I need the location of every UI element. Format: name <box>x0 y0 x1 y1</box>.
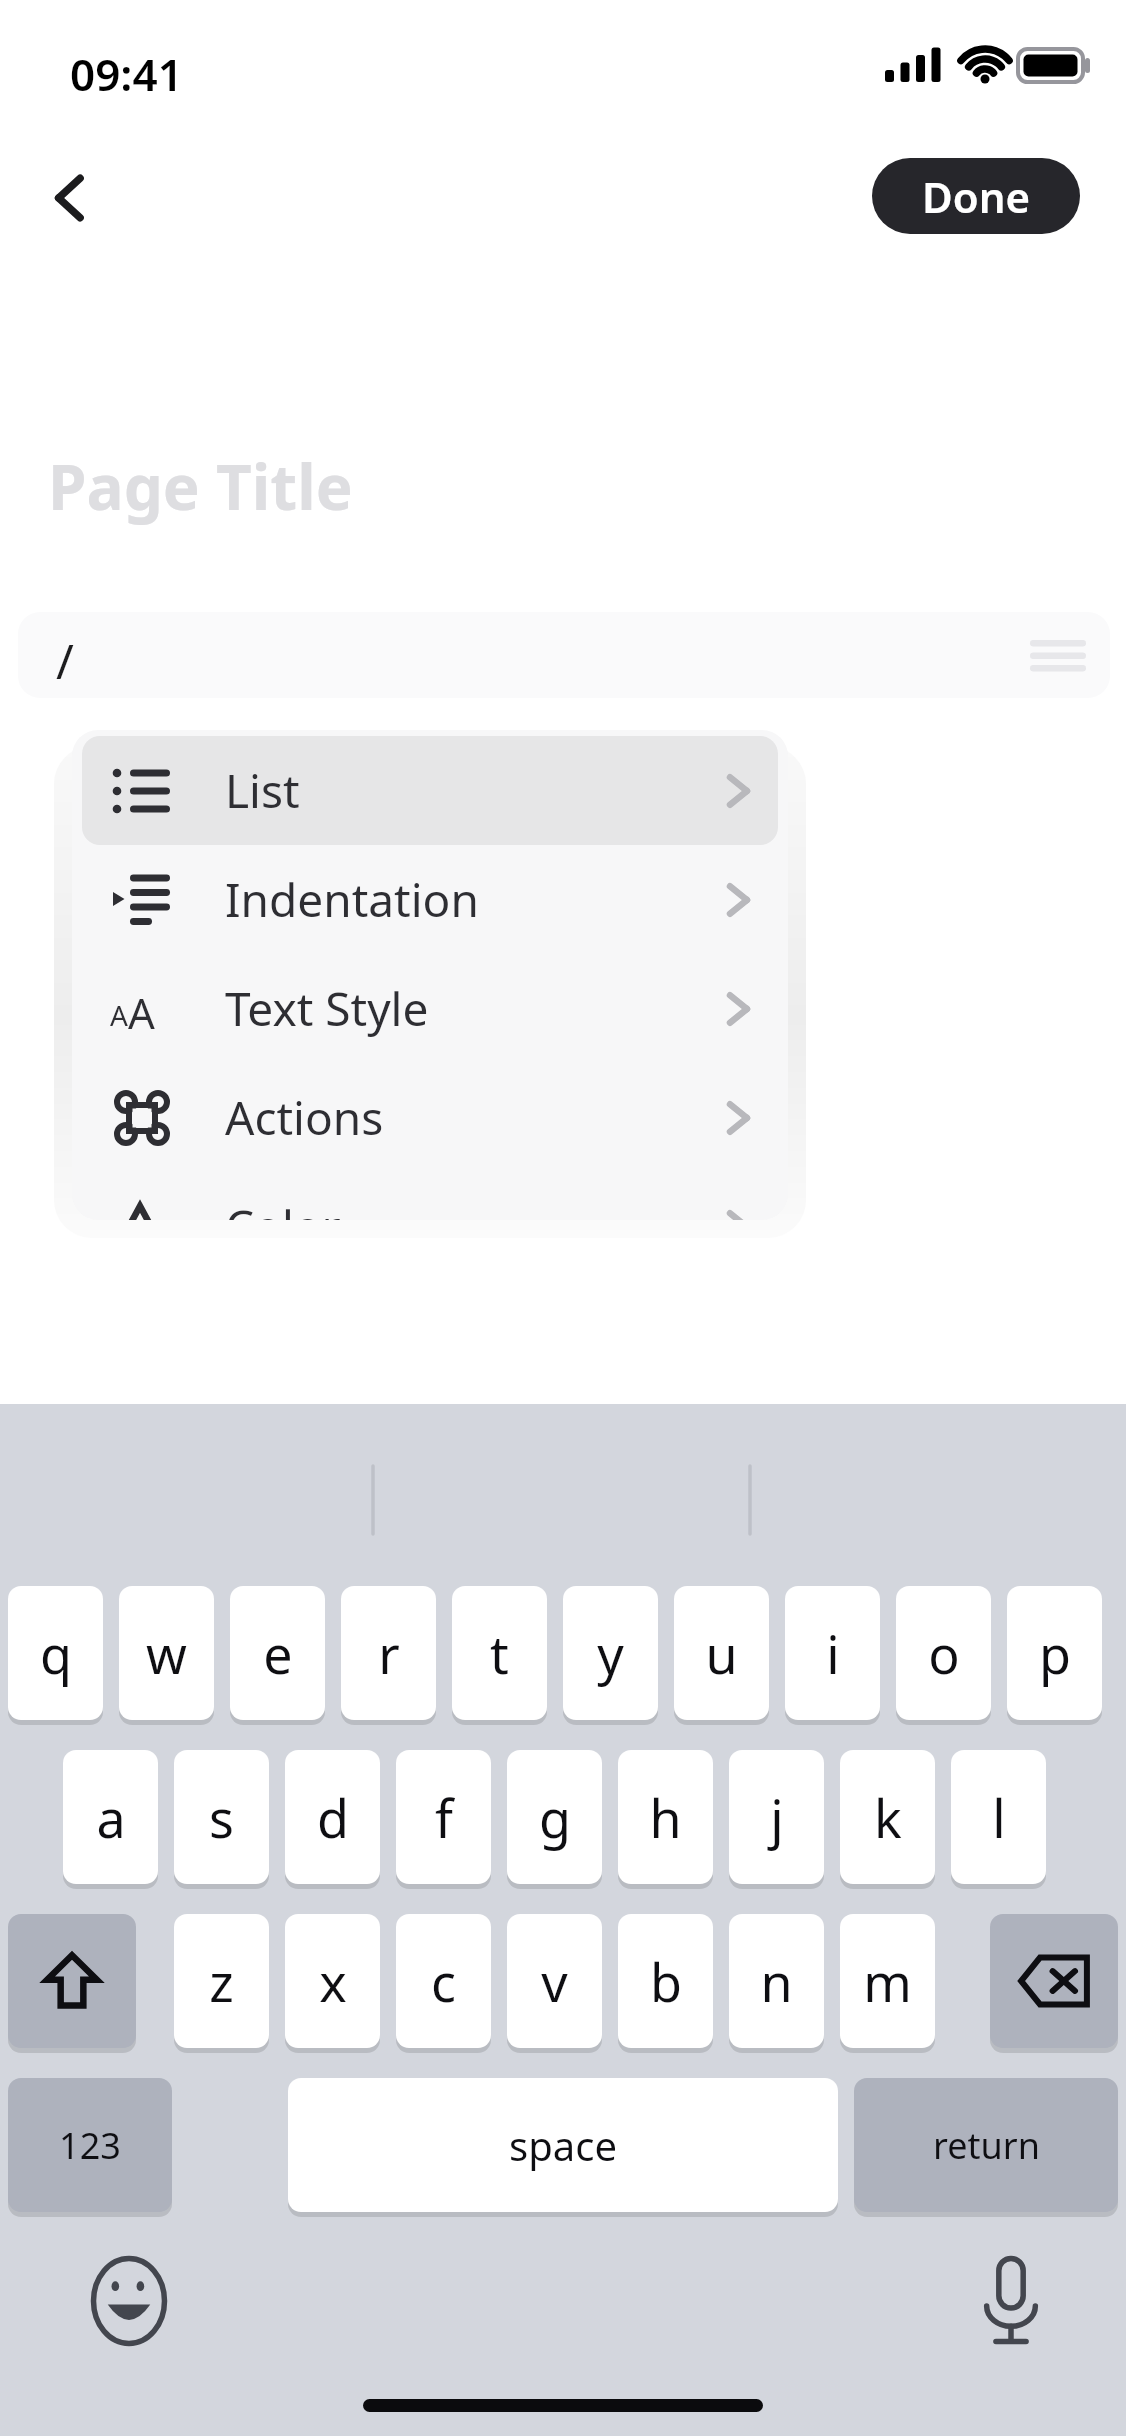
staticText: x <box>319 1946 347 2017</box>
button[interactable]: space <box>288 2078 838 2212</box>
staticText: A <box>110 996 128 1034</box>
staticText: 123 <box>59 2121 121 2170</box>
button[interactable]: Back <box>24 150 120 246</box>
staticText: c <box>431 1946 456 2017</box>
button[interactable]: g <box>507 1750 602 1884</box>
button[interactable]: Backspace <box>990 1914 1118 2048</box>
button[interactable]: x <box>285 1914 380 2048</box>
button[interactable]: l <box>951 1750 1046 1884</box>
button[interactable]: j <box>729 1750 824 1884</box>
staticText: b <box>650 1946 682 2017</box>
button[interactable]: 123 <box>8 2078 172 2212</box>
button[interactable]: Color <box>82 1172 778 1220</box>
button[interactable]: b <box>618 1914 713 2048</box>
button[interactable]: t <box>452 1586 547 1720</box>
staticText: p <box>1039 1618 1071 1689</box>
staticText: Page Title <box>48 444 353 528</box>
staticText: a <box>96 1782 126 1853</box>
button[interactable]: c <box>396 1914 491 2048</box>
staticText: e <box>263 1618 293 1689</box>
button[interactable]: A <box>82 954 778 1063</box>
staticText: r <box>378 1618 400 1689</box>
staticText: 09:41 <box>70 44 183 104</box>
staticText: h <box>649 1782 682 1853</box>
staticText: l <box>992 1782 1006 1853</box>
staticText: o <box>928 1618 960 1689</box>
staticText: Color <box>225 1195 341 1220</box>
button[interactable]: List <box>82 736 778 845</box>
button[interactable]: r <box>341 1586 436 1720</box>
staticText: y <box>597 1618 624 1689</box>
button[interactable]: p <box>1007 1586 1102 1720</box>
staticText: Actions <box>225 1086 384 1149</box>
staticText: List <box>225 759 300 822</box>
button[interactable]: y <box>563 1586 658 1720</box>
staticText: Indentation <box>225 868 479 931</box>
staticText: i <box>826 1618 840 1689</box>
staticText: g <box>539 1782 571 1853</box>
button[interactable]: / <box>18 612 1110 698</box>
button[interactable]: s <box>174 1750 269 1884</box>
staticText: n <box>760 1946 793 2017</box>
button[interactable]: n <box>729 1914 824 2048</box>
staticText: Done <box>922 168 1031 225</box>
button[interactable]: Actions <box>82 1063 778 1172</box>
staticText: f <box>435 1782 453 1853</box>
staticText: A <box>128 984 155 1034</box>
button[interactable]: a <box>63 1750 158 1884</box>
staticText: m <box>863 1946 912 2017</box>
button[interactable]: m <box>840 1914 935 2048</box>
button[interactable]: Dictate <box>952 2242 1070 2360</box>
button[interactable]: return <box>854 2078 1118 2212</box>
button[interactable]: o <box>896 1586 991 1720</box>
staticText: k <box>874 1782 902 1853</box>
staticText: t <box>490 1618 509 1689</box>
button[interactable]: d <box>285 1750 380 1884</box>
button[interactable]: i <box>785 1586 880 1720</box>
staticText: Text Style <box>225 977 429 1040</box>
button[interactable]: w <box>119 1586 214 1720</box>
staticText: / <box>56 628 74 693</box>
staticText: return <box>933 2121 1040 2170</box>
staticText: z <box>209 1946 234 2017</box>
button[interactable]: Shift <box>8 1914 136 2048</box>
staticText: v <box>541 1946 568 2017</box>
button[interactable]: f <box>396 1750 491 1884</box>
button[interactable]: Emoji <box>70 2242 188 2360</box>
staticText: q <box>40 1618 72 1689</box>
staticText: d <box>317 1782 349 1853</box>
button[interactable]: u <box>674 1586 769 1720</box>
staticText: j <box>770 1782 784 1853</box>
button[interactable]: e <box>230 1586 325 1720</box>
button[interactable]: Done <box>872 158 1080 234</box>
button[interactable]: z <box>174 1914 269 2048</box>
staticText: w <box>146 1618 187 1689</box>
staticText: s <box>209 1782 234 1853</box>
staticText: u <box>705 1618 738 1689</box>
button[interactable]: q <box>8 1586 103 1720</box>
button[interactable]: v <box>507 1914 602 2048</box>
button[interactable]: h <box>618 1750 713 1884</box>
button[interactable]: Indentation <box>82 845 778 954</box>
button[interactable]: k <box>840 1750 935 1884</box>
staticText: space <box>509 2118 617 2172</box>
